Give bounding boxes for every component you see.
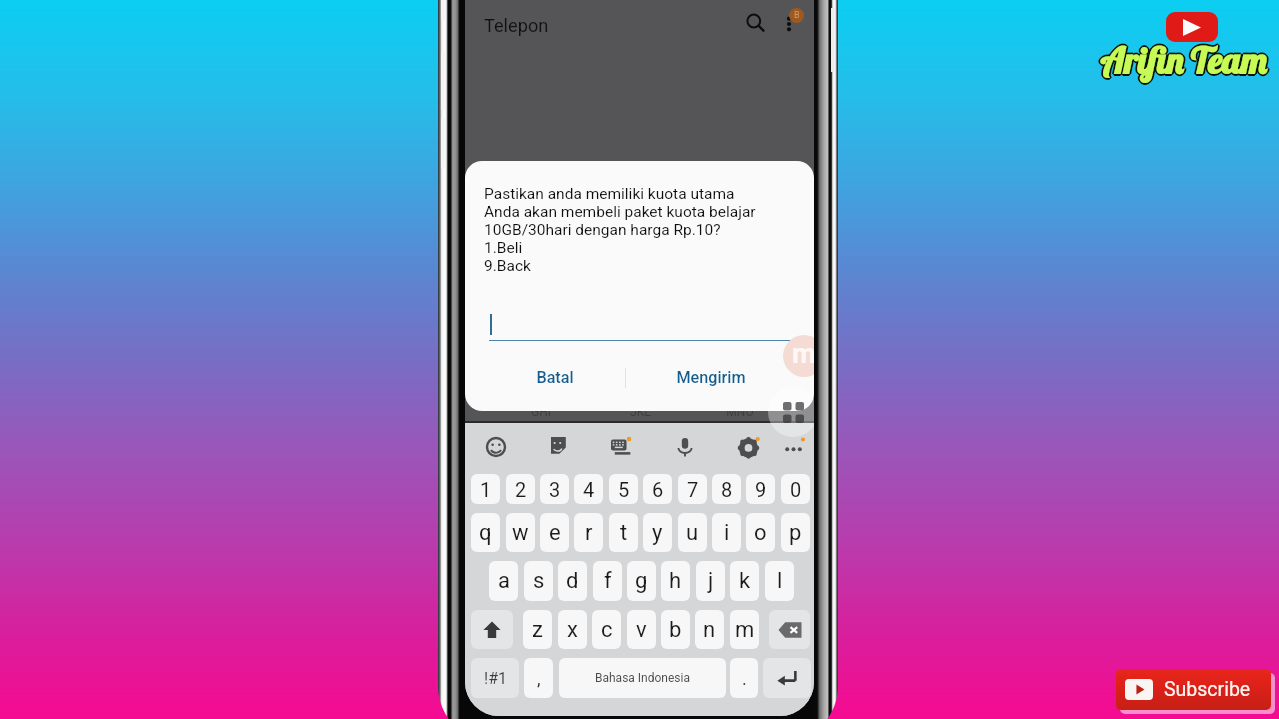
button[interactable]: Search	[737, 5, 773, 41]
button[interactable]: 0	[781, 474, 810, 504]
button[interactable]: Clipboard	[604, 430, 638, 464]
staticText: MNO	[726, 405, 754, 419]
staticText: !#1	[484, 669, 507, 688]
button[interactable]: c	[592, 610, 621, 649]
staticText: Batal	[536, 368, 574, 387]
button[interactable]: m	[730, 610, 759, 649]
button[interactable]: More options	[771, 6, 807, 42]
staticText: a	[498, 568, 510, 594]
button[interactable]: Quick tools	[768, 387, 814, 437]
button[interactable]: z	[523, 610, 552, 649]
staticText: Arifin Team	[1100, 37, 1266, 82]
staticText: Pastikan anda memiliki kuota utama	[484, 185, 735, 203]
staticText: p	[789, 520, 802, 546]
button[interactable]: Bahasa Indonesia	[559, 658, 726, 698]
staticText: u	[686, 520, 699, 546]
staticText: v	[636, 617, 647, 643]
staticText: Arifin Team	[1101, 37, 1267, 82]
staticText: m	[792, 338, 814, 370]
button[interactable]: o	[746, 513, 775, 552]
staticText: t	[620, 520, 628, 546]
button[interactable]: 7	[678, 474, 707, 504]
button[interactable]: More options	[776, 430, 810, 464]
button[interactable]: Screen recorder	[783, 335, 814, 377]
staticText: Arifin Team	[1099, 38, 1265, 83]
staticText: m	[735, 617, 755, 643]
button[interactable]: Mengirim	[651, 359, 771, 395]
button[interactable]: q	[471, 513, 500, 552]
button[interactable]: .	[730, 658, 758, 698]
button[interactable]: Account	[789, 8, 804, 23]
staticText: h	[669, 568, 682, 594]
button[interactable]: b	[661, 610, 690, 649]
staticText: GHI	[531, 405, 551, 419]
button[interactable]: Backspace	[769, 610, 810, 649]
button[interactable]: t	[609, 513, 638, 552]
staticText: Arifin Team	[1099, 37, 1265, 82]
button[interactable]: l	[765, 561, 794, 601]
button[interactable]: Enter	[763, 658, 811, 698]
button[interactable]: f	[593, 561, 622, 601]
staticText: 9.Back	[484, 257, 531, 275]
button[interactable]: v	[627, 610, 656, 649]
button[interactable]: 8	[712, 474, 741, 504]
staticText: Arifin Team	[1101, 38, 1267, 83]
staticText: o	[754, 520, 767, 546]
button[interactable]: i	[712, 513, 741, 552]
button[interactable]: 3	[540, 474, 569, 504]
button[interactable]: j	[696, 561, 725, 601]
staticText: Arifin Team	[1100, 40, 1266, 85]
button[interactable]: k	[730, 561, 759, 601]
staticText: r	[585, 520, 593, 546]
staticText: Arifin Team	[1100, 38, 1266, 83]
staticText: c	[601, 617, 613, 643]
button[interactable]: 5	[609, 474, 638, 504]
staticText: b	[669, 617, 682, 643]
button[interactable]: Symbols	[471, 658, 519, 698]
button[interactable]: s	[524, 561, 553, 601]
button[interactable]: Batal	[495, 359, 615, 395]
button[interactable]: n	[695, 610, 724, 649]
button[interactable]: ,	[524, 658, 553, 698]
button[interactable]: e	[540, 513, 569, 552]
button[interactable]: d	[558, 561, 587, 601]
staticText: w	[512, 520, 529, 546]
button[interactable]: w	[506, 513, 535, 552]
staticText: 10GB/30hari dengan harga Rp.10?	[484, 221, 721, 239]
button[interactable]: Emoji	[479, 430, 513, 464]
staticText: 8	[721, 478, 733, 501]
button[interactable]: x	[558, 610, 587, 649]
button[interactable]: p	[781, 513, 810, 552]
staticText: ,	[537, 668, 541, 689]
button[interactable]: 2	[506, 474, 535, 504]
button[interactable]: g	[627, 561, 656, 601]
staticText: z	[532, 617, 543, 643]
button[interactable]: 1	[471, 474, 500, 504]
button[interactable]: 9	[746, 474, 775, 504]
staticText: Arifin Team	[1102, 38, 1268, 83]
staticText: 2	[515, 478, 527, 501]
button[interactable]: a	[489, 561, 518, 601]
button[interactable]: YouTube	[1166, 12, 1218, 42]
button[interactable]: Subscribe	[1116, 669, 1271, 710]
staticText: f	[604, 568, 612, 594]
button[interactable]: Stickers	[542, 430, 576, 464]
staticText: B	[794, 10, 800, 21]
button[interactable]: r	[574, 513, 603, 552]
staticText: n	[703, 617, 716, 643]
staticText: y	[652, 520, 663, 546]
button[interactable]: h	[661, 561, 690, 601]
staticText: g	[635, 568, 648, 594]
button[interactable]: 6	[643, 474, 672, 504]
button[interactable]: Settings	[731, 430, 765, 464]
staticText: 9	[755, 478, 767, 501]
button[interactable]: 4	[574, 474, 603, 504]
staticText: JKL	[630, 405, 651, 419]
button[interactable]: y	[643, 513, 672, 552]
button[interactable]: Shift	[471, 610, 513, 649]
staticText: 3	[549, 478, 561, 501]
staticText: Arifin Team	[1099, 39, 1265, 84]
button[interactable]: u	[678, 513, 707, 552]
staticText: Arifin Team	[1100, 36, 1266, 81]
button[interactable]: Voice input	[668, 430, 702, 464]
